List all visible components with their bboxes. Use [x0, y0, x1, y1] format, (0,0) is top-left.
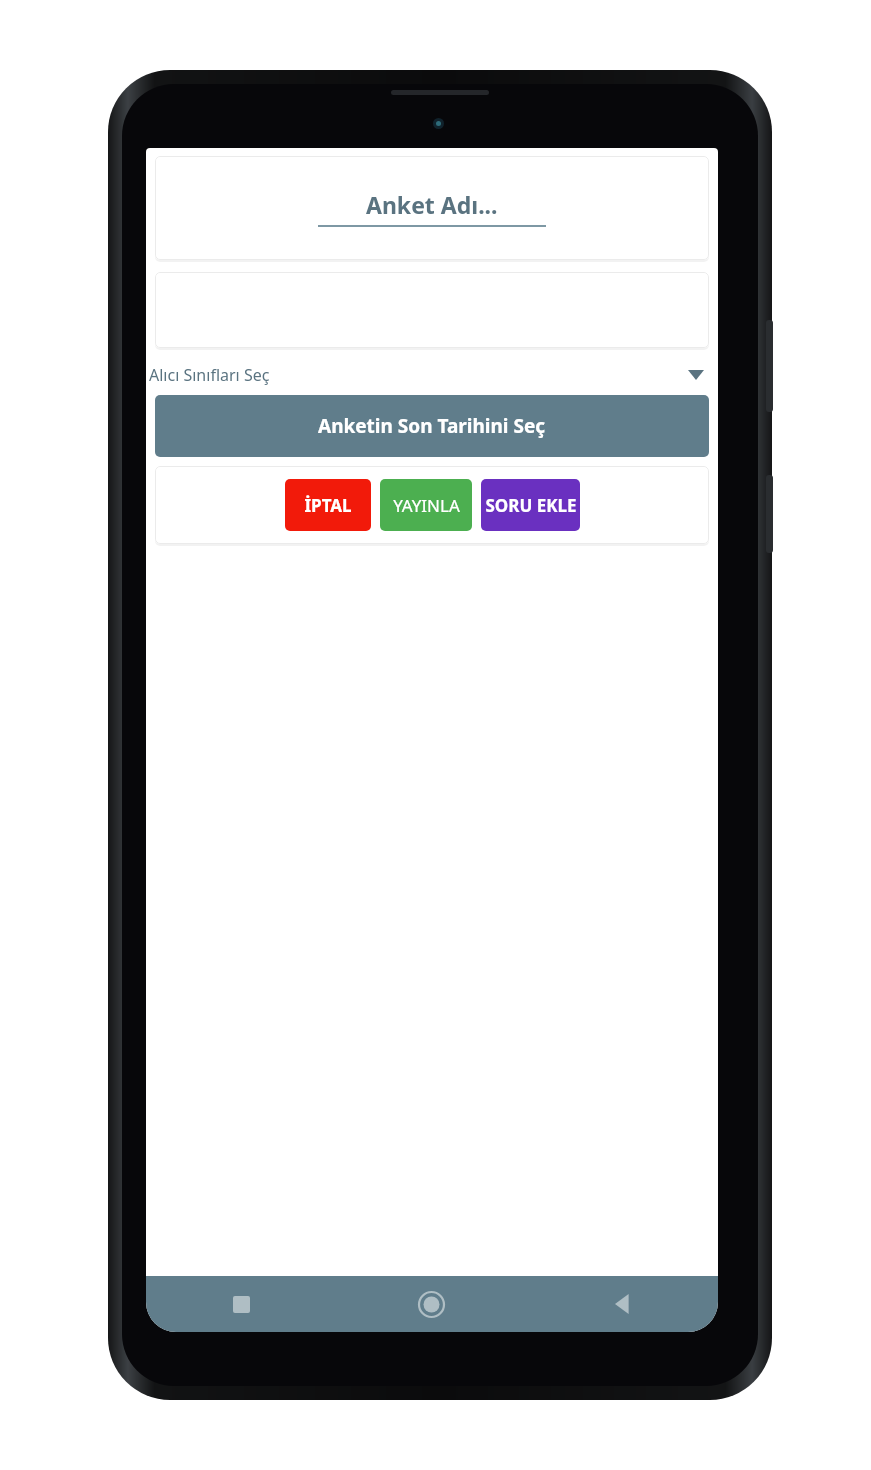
staticText: İPTAL [304, 494, 352, 517]
button[interactable]: Anket Adı... [155, 156, 709, 260]
staticText: YAYINLA [393, 494, 460, 517]
button[interactable]: Anketin Son Tarihini Seç [155, 395, 709, 457]
staticText: SORU EKLE [485, 494, 577, 517]
button[interactable]: YAYINLA [380, 479, 472, 531]
staticText: Anketin Son Tarihini Seç [318, 413, 546, 439]
button[interactable]: SORU EKLE [481, 479, 580, 531]
button[interactable]: İPTAL [285, 479, 371, 531]
button[interactable]: Home [336, 1276, 527, 1332]
button[interactable] [155, 272, 709, 348]
staticText: Anket Adı... [366, 189, 498, 220]
button[interactable]: Alıcı Sınıfları Seç [146, 358, 718, 392]
staticText: Alıcı Sınıfları Seç [149, 364, 270, 386]
button[interactable]: Back [527, 1276, 718, 1332]
button[interactable]: Recent apps [146, 1276, 336, 1332]
